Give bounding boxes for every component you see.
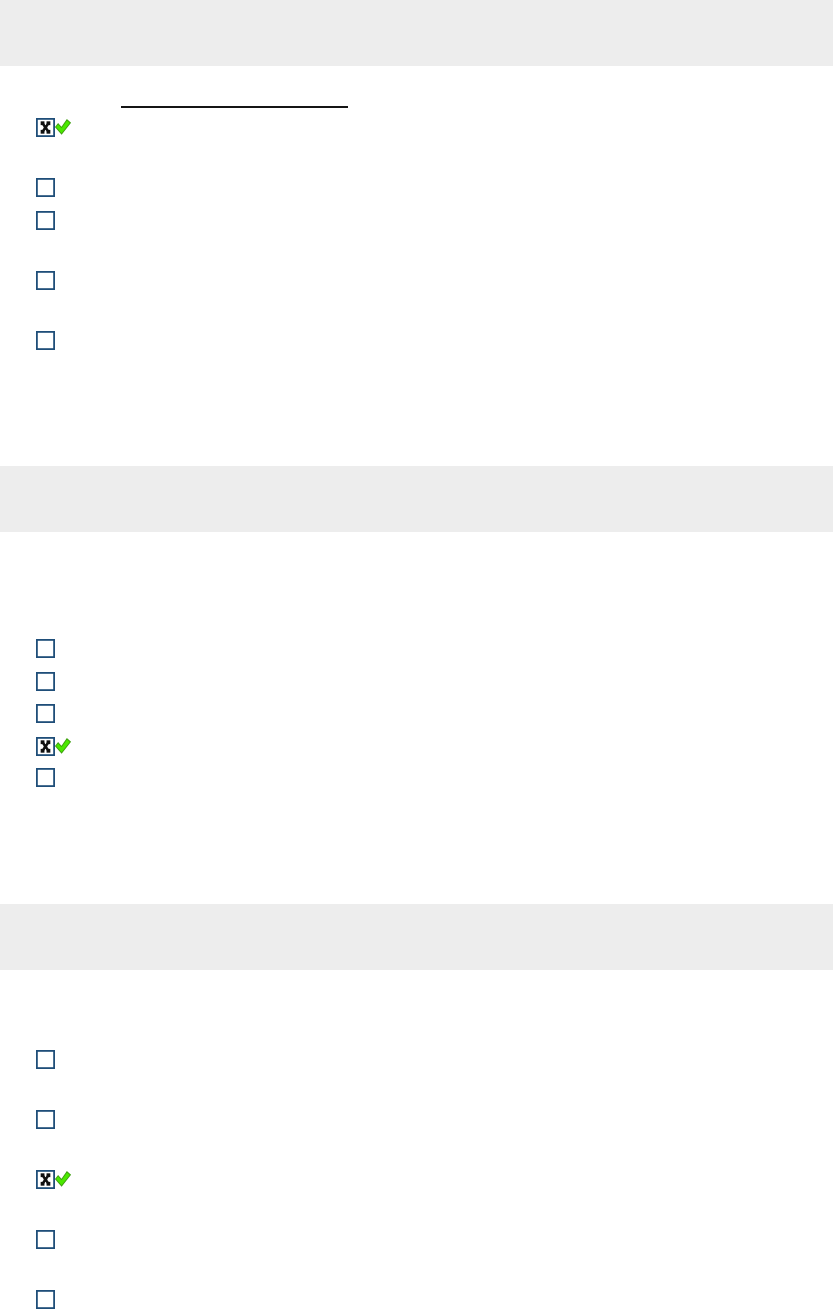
button[interactable]: Answer 2 [0,672,833,691]
button[interactable]: Answer 4 [0,271,833,290]
button[interactable]: Answer 1 [0,1050,833,1069]
button[interactable]: Answer 5 [0,768,833,787]
button[interactable]: Answer 3 [0,211,833,230]
button[interactable]: Answer 1, selected [0,118,833,137]
button[interactable]: Answer 3, selected [0,1170,833,1189]
button[interactable]: Answer 2 [0,1110,833,1129]
button[interactable]: Answer 1 [0,639,833,658]
button[interactable]: Answer 4, selected [0,737,833,756]
button[interactable]: Answer 5 [0,331,833,350]
button[interactable]: Answer 2 [0,178,833,197]
button[interactable]: Answer 3 [0,704,833,723]
button[interactable]: Answer 5 [0,1290,833,1309]
button[interactable]: Answer 4 [0,1230,833,1249]
